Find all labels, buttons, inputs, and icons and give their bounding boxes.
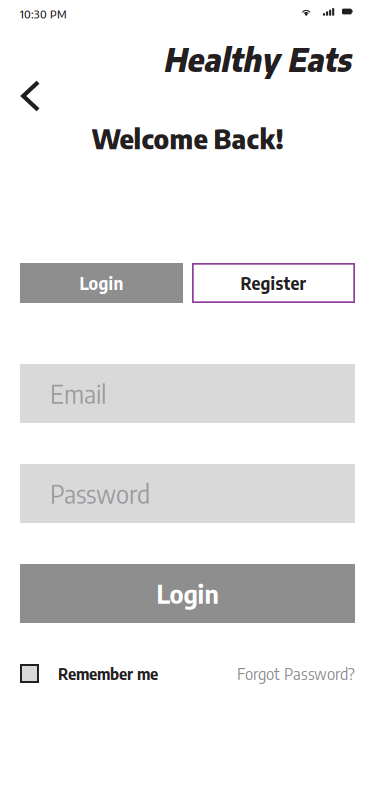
staticText: Login [156,578,218,609]
button[interactable]: Login [20,263,183,303]
button[interactable]: Login [20,564,355,623]
staticText: Healthy Eats [163,39,351,79]
staticText: Password [50,478,150,509]
staticText: Welcome Back! [91,121,283,155]
staticText: Forgot Password? [237,663,355,683]
staticText: Remember me [58,663,158,683]
button[interactable]: Forgot Password? [237,663,355,683]
staticText: Login [79,272,123,294]
staticText: Register [240,272,306,294]
staticText: Email [50,378,106,409]
button[interactable]: Remember me [20,663,158,683]
button[interactable]: Register [192,263,355,303]
button[interactable]: Back [0,79,40,112]
staticText: 10:30 PM [20,7,67,21]
